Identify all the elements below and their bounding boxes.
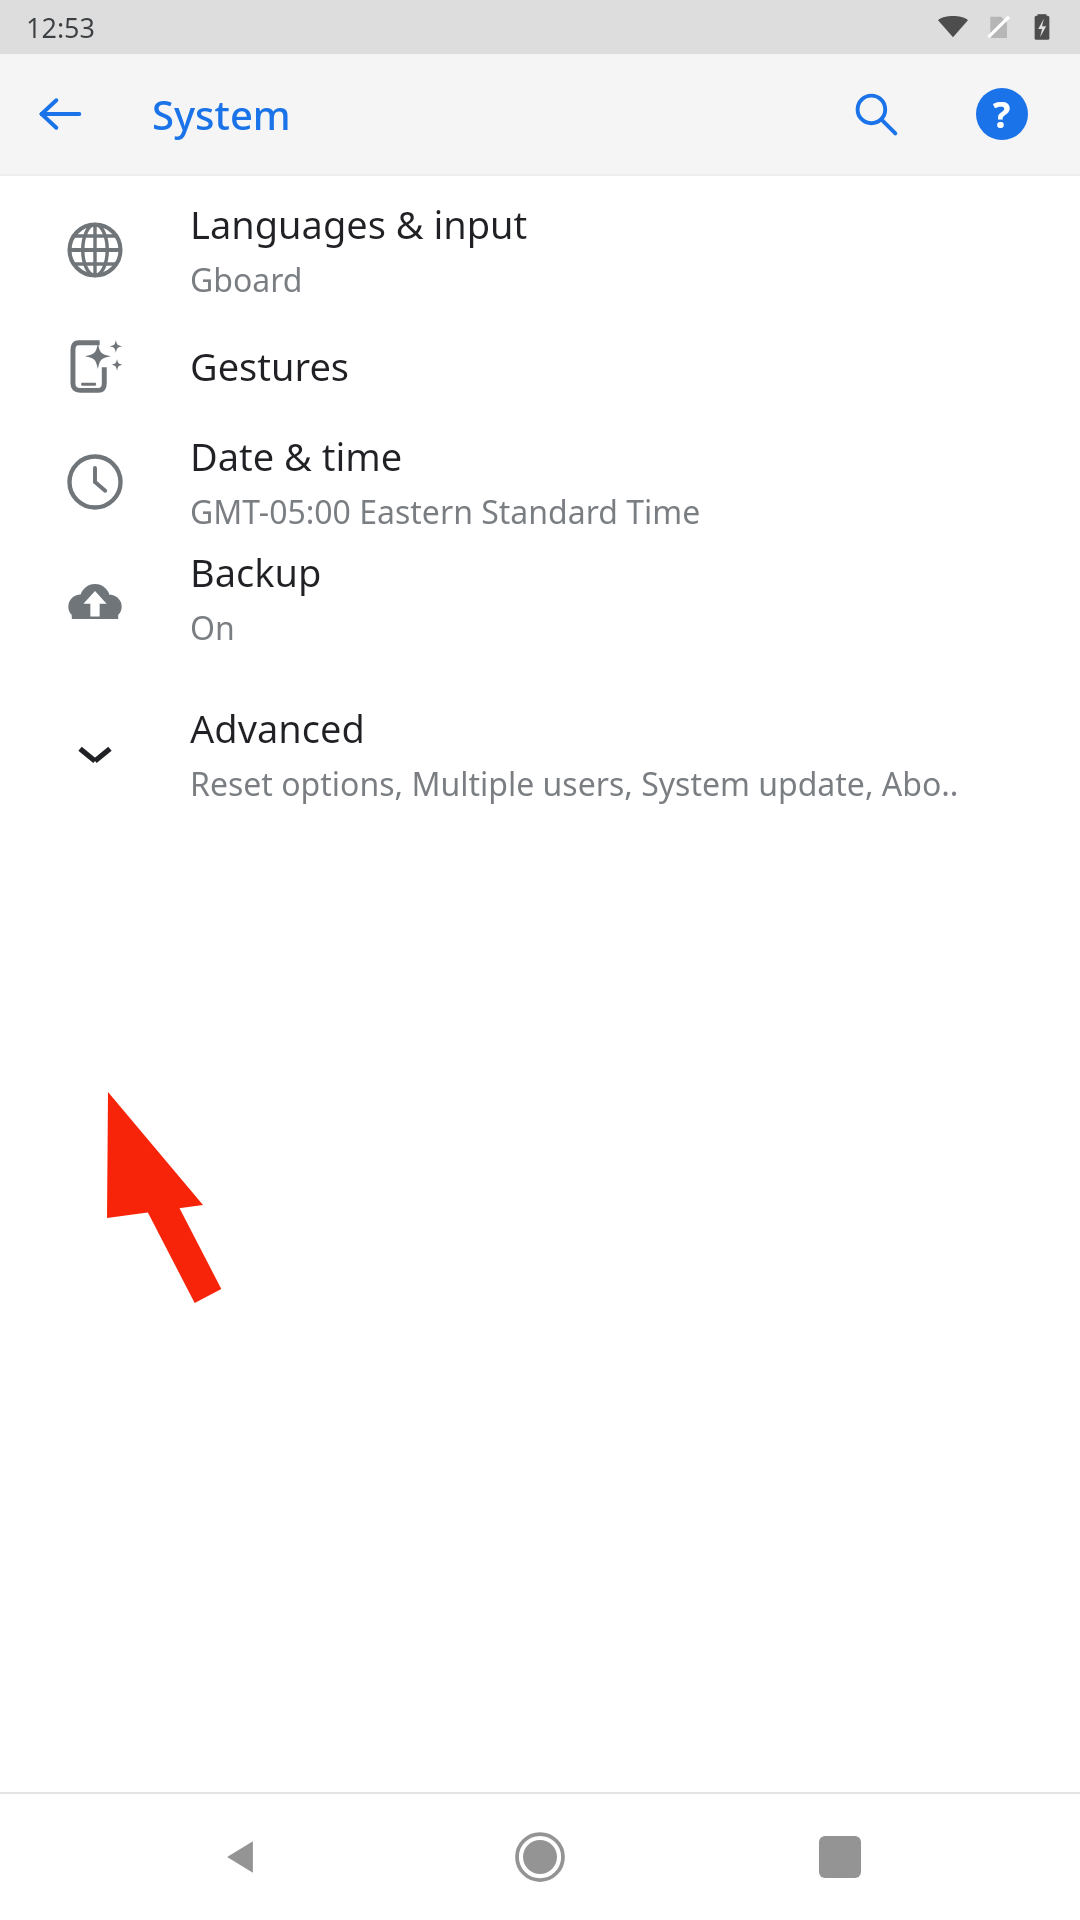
button[interactable]: Back <box>20 74 100 154</box>
staticText: Backup <box>190 546 322 598</box>
button[interactable]: Date & time <box>0 424 1080 540</box>
button[interactable]: Gestures <box>0 308 1080 424</box>
staticText: Languages & input <box>190 198 528 250</box>
staticText: Gestures <box>190 340 350 392</box>
staticText: 12:53 <box>26 9 96 46</box>
staticText: On <box>190 606 235 650</box>
button[interactable]: Home <box>480 1797 600 1917</box>
staticText: System <box>152 87 291 141</box>
staticText: Date & time <box>190 430 403 482</box>
button[interactable]: Backup <box>0 540 1080 656</box>
button[interactable]: Help <box>960 72 1044 156</box>
button[interactable]: Search <box>834 72 918 156</box>
button[interactable]: Languages & input <box>0 192 1080 308</box>
staticText: Advanced <box>190 702 365 754</box>
button[interactable]: Recent apps <box>780 1797 900 1917</box>
staticText: Gboard <box>190 258 303 302</box>
staticText: GMT-05:00 Eastern Standard Time <box>190 490 701 534</box>
staticText: Reset options, Multiple users, System up… <box>190 762 959 806</box>
button[interactable]: Back <box>180 1797 300 1917</box>
button[interactable]: Advanced <box>0 696 1080 812</box>
staticText: ? <box>993 90 1011 139</box>
